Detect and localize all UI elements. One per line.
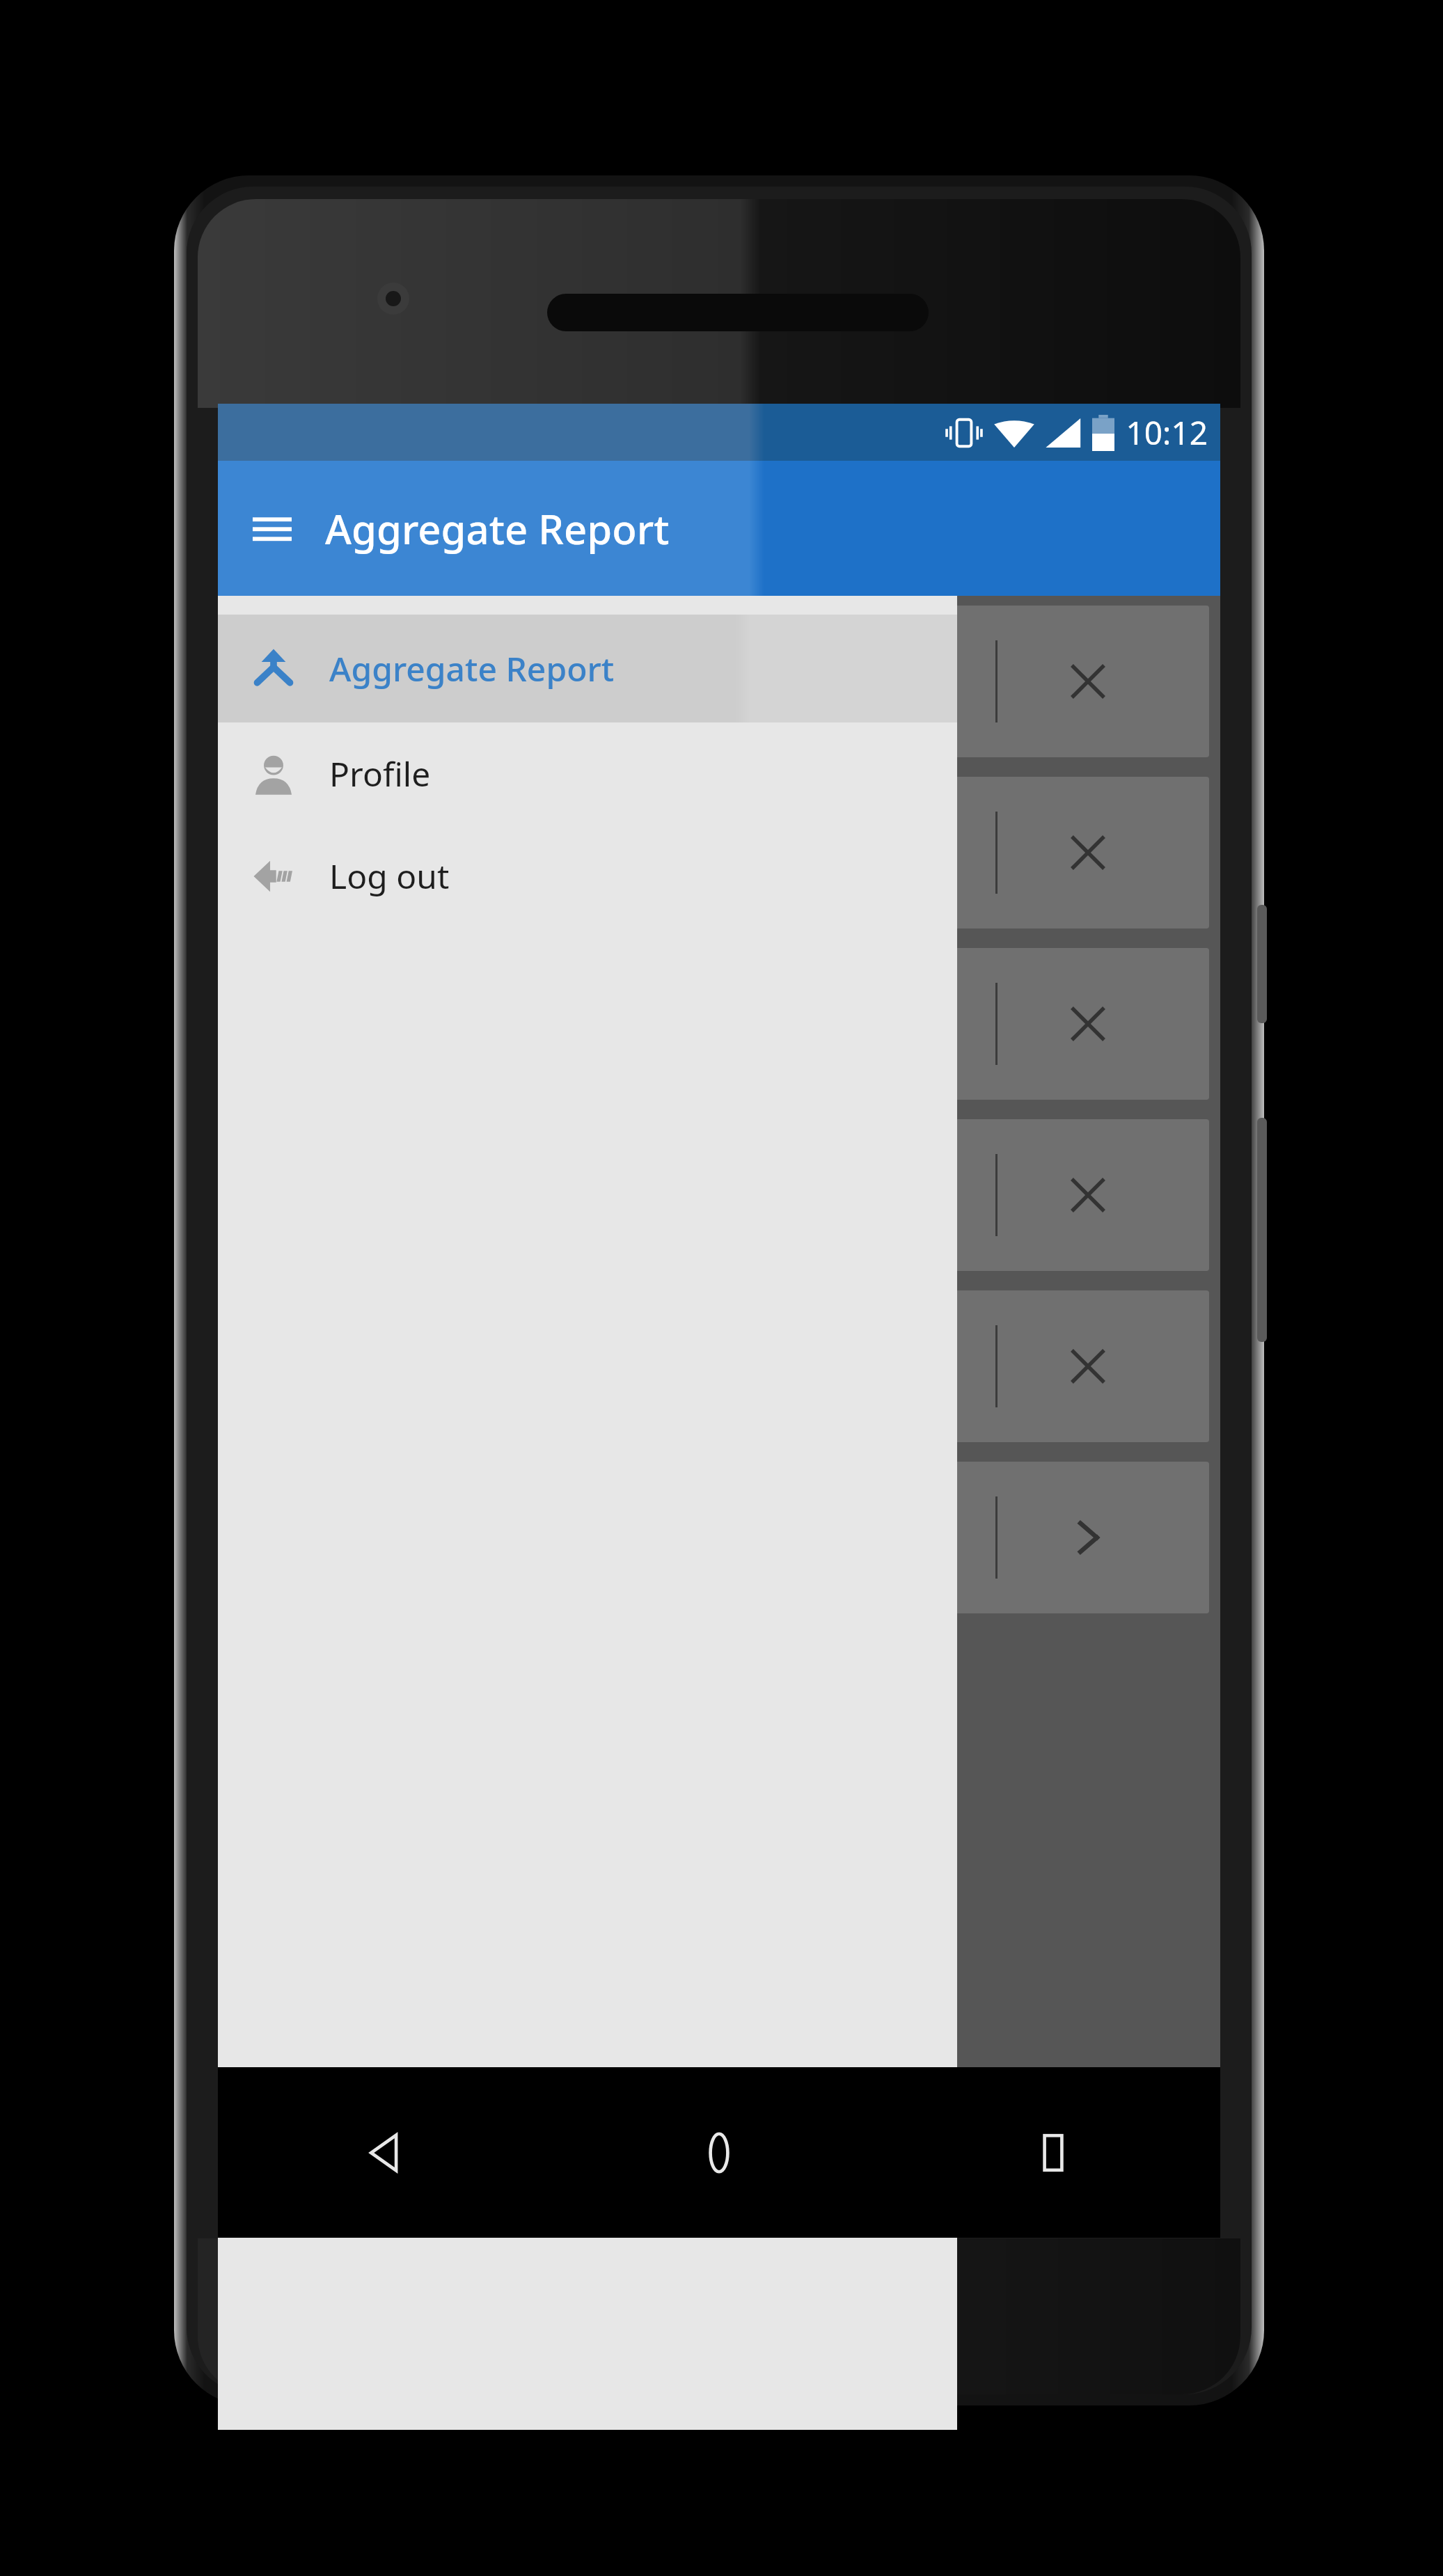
button[interactable]: Aggregate Report (218, 615, 957, 722)
button[interactable] (229, 606, 1209, 757)
button[interactable] (229, 1290, 1209, 1442)
button[interactable] (229, 1462, 1209, 1613)
button[interactable] (229, 948, 1209, 1100)
button[interactable]: Home (552, 2067, 886, 2238)
staticText: Aggregate Report (325, 501, 670, 556)
staticText: 10:12 (1126, 411, 1208, 455)
staticText: Aggregate Report (329, 646, 615, 691)
staticText: Log out (329, 853, 450, 899)
button[interactable]: Log out (218, 825, 957, 927)
button[interactable]: Profile (218, 722, 957, 825)
button[interactable] (229, 1119, 1209, 1271)
staticText: Profile (329, 751, 431, 796)
button[interactable]: Recent apps (886, 2067, 1220, 2238)
button[interactable]: Open navigation drawer (233, 489, 311, 567)
button[interactable]: Back (218, 2067, 552, 2238)
button[interactable] (229, 777, 1209, 929)
